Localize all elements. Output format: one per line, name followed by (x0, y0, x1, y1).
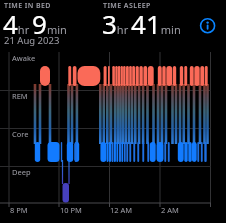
staticText: REM (12, 91, 28, 101)
staticText: 21 Aug 2023 (4, 34, 60, 47)
button[interactable] (198, 15, 218, 35)
staticText: TIME IN BED (4, 1, 51, 11)
staticText: 12 AM (110, 205, 133, 215)
staticText: 10 PM (60, 205, 82, 215)
staticText: Core (12, 129, 29, 139)
staticText: 8 PM (10, 205, 28, 215)
staticText: 3hr 41min (102, 6, 181, 41)
staticText: Deep (12, 167, 31, 177)
staticText: 4hr 9min (3, 6, 67, 41)
staticText: TIME ASLEEP (103, 1, 151, 11)
staticText: Awake (12, 53, 36, 63)
staticText: 2 AM (161, 205, 179, 215)
